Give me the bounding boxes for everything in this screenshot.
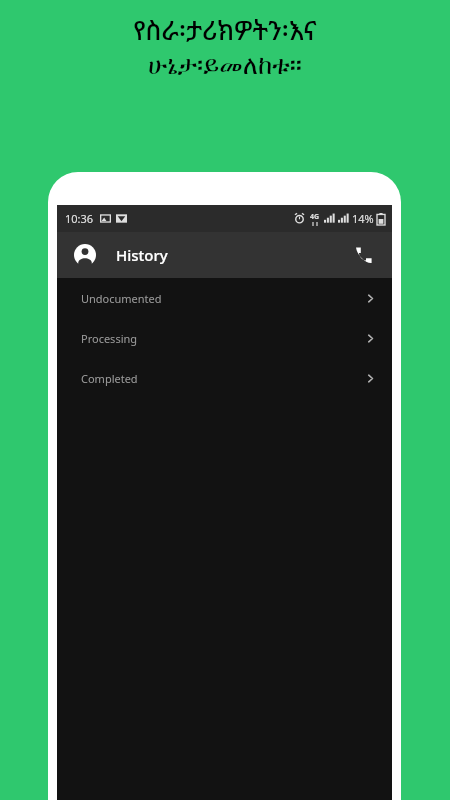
button[interactable]: Account xyxy=(68,238,102,272)
staticText: Completed xyxy=(81,371,138,386)
staticText: ሁኔታ፡ይመለከቱ። xyxy=(148,53,302,79)
staticText: Undocumented xyxy=(81,291,162,306)
staticText: 14% xyxy=(352,211,374,226)
button[interactable]: Undocumented xyxy=(57,278,392,318)
button[interactable]: Call xyxy=(347,238,381,272)
staticText: 4G xyxy=(310,212,320,222)
button[interactable]: Processing xyxy=(57,318,392,358)
staticText: 10:36 xyxy=(65,211,94,226)
button[interactable]: Completed xyxy=(57,358,392,398)
staticText: የስራ፡ታሪክዎትን፡እና xyxy=(133,12,317,47)
staticText: Processing xyxy=(81,331,138,346)
staticText: History xyxy=(116,245,168,265)
